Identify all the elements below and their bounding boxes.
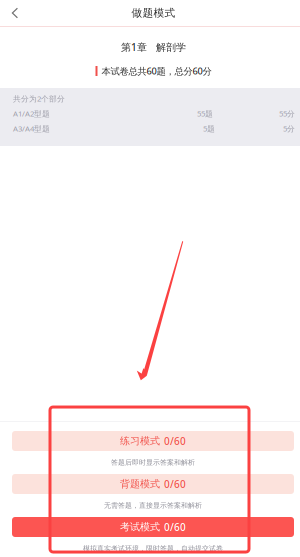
staticText: 考试模式: [120, 521, 160, 533]
staticText: 无需答题，直接显示答案和解析: [104, 501, 202, 510]
staticText: 0/60: [164, 477, 186, 491]
staticText: 第1章 解剖学: [121, 40, 186, 54]
button[interactable]: 背题模式: [12, 474, 294, 517]
staticText: 答题后即时显示答案和解析: [111, 458, 195, 467]
staticText: 练习模式: [120, 435, 160, 447]
staticText: 本试卷总共60题，总分60分: [101, 65, 211, 77]
staticText: 0/60: [164, 520, 186, 534]
button[interactable]: 练习模式: [12, 431, 294, 474]
staticText: 模拟真实考试环境，限时答题，自动提交试卷: [83, 544, 223, 553]
staticText: 55分: [279, 108, 295, 119]
staticText: 5分: [283, 123, 295, 134]
staticText: 5题: [203, 123, 215, 134]
staticText: A1/A2型题: [13, 108, 50, 119]
staticText: 做题模式: [131, 6, 175, 20]
staticText: A3/A4型题: [13, 123, 50, 134]
staticText: 0/60: [164, 434, 186, 448]
button[interactable]: Back: [0, 0, 44, 26]
staticText: 55题: [197, 108, 213, 119]
staticText: 背题模式: [120, 478, 160, 490]
staticText: 共分为2个部分: [13, 93, 65, 104]
button[interactable]: 考试模式: [12, 517, 294, 557]
